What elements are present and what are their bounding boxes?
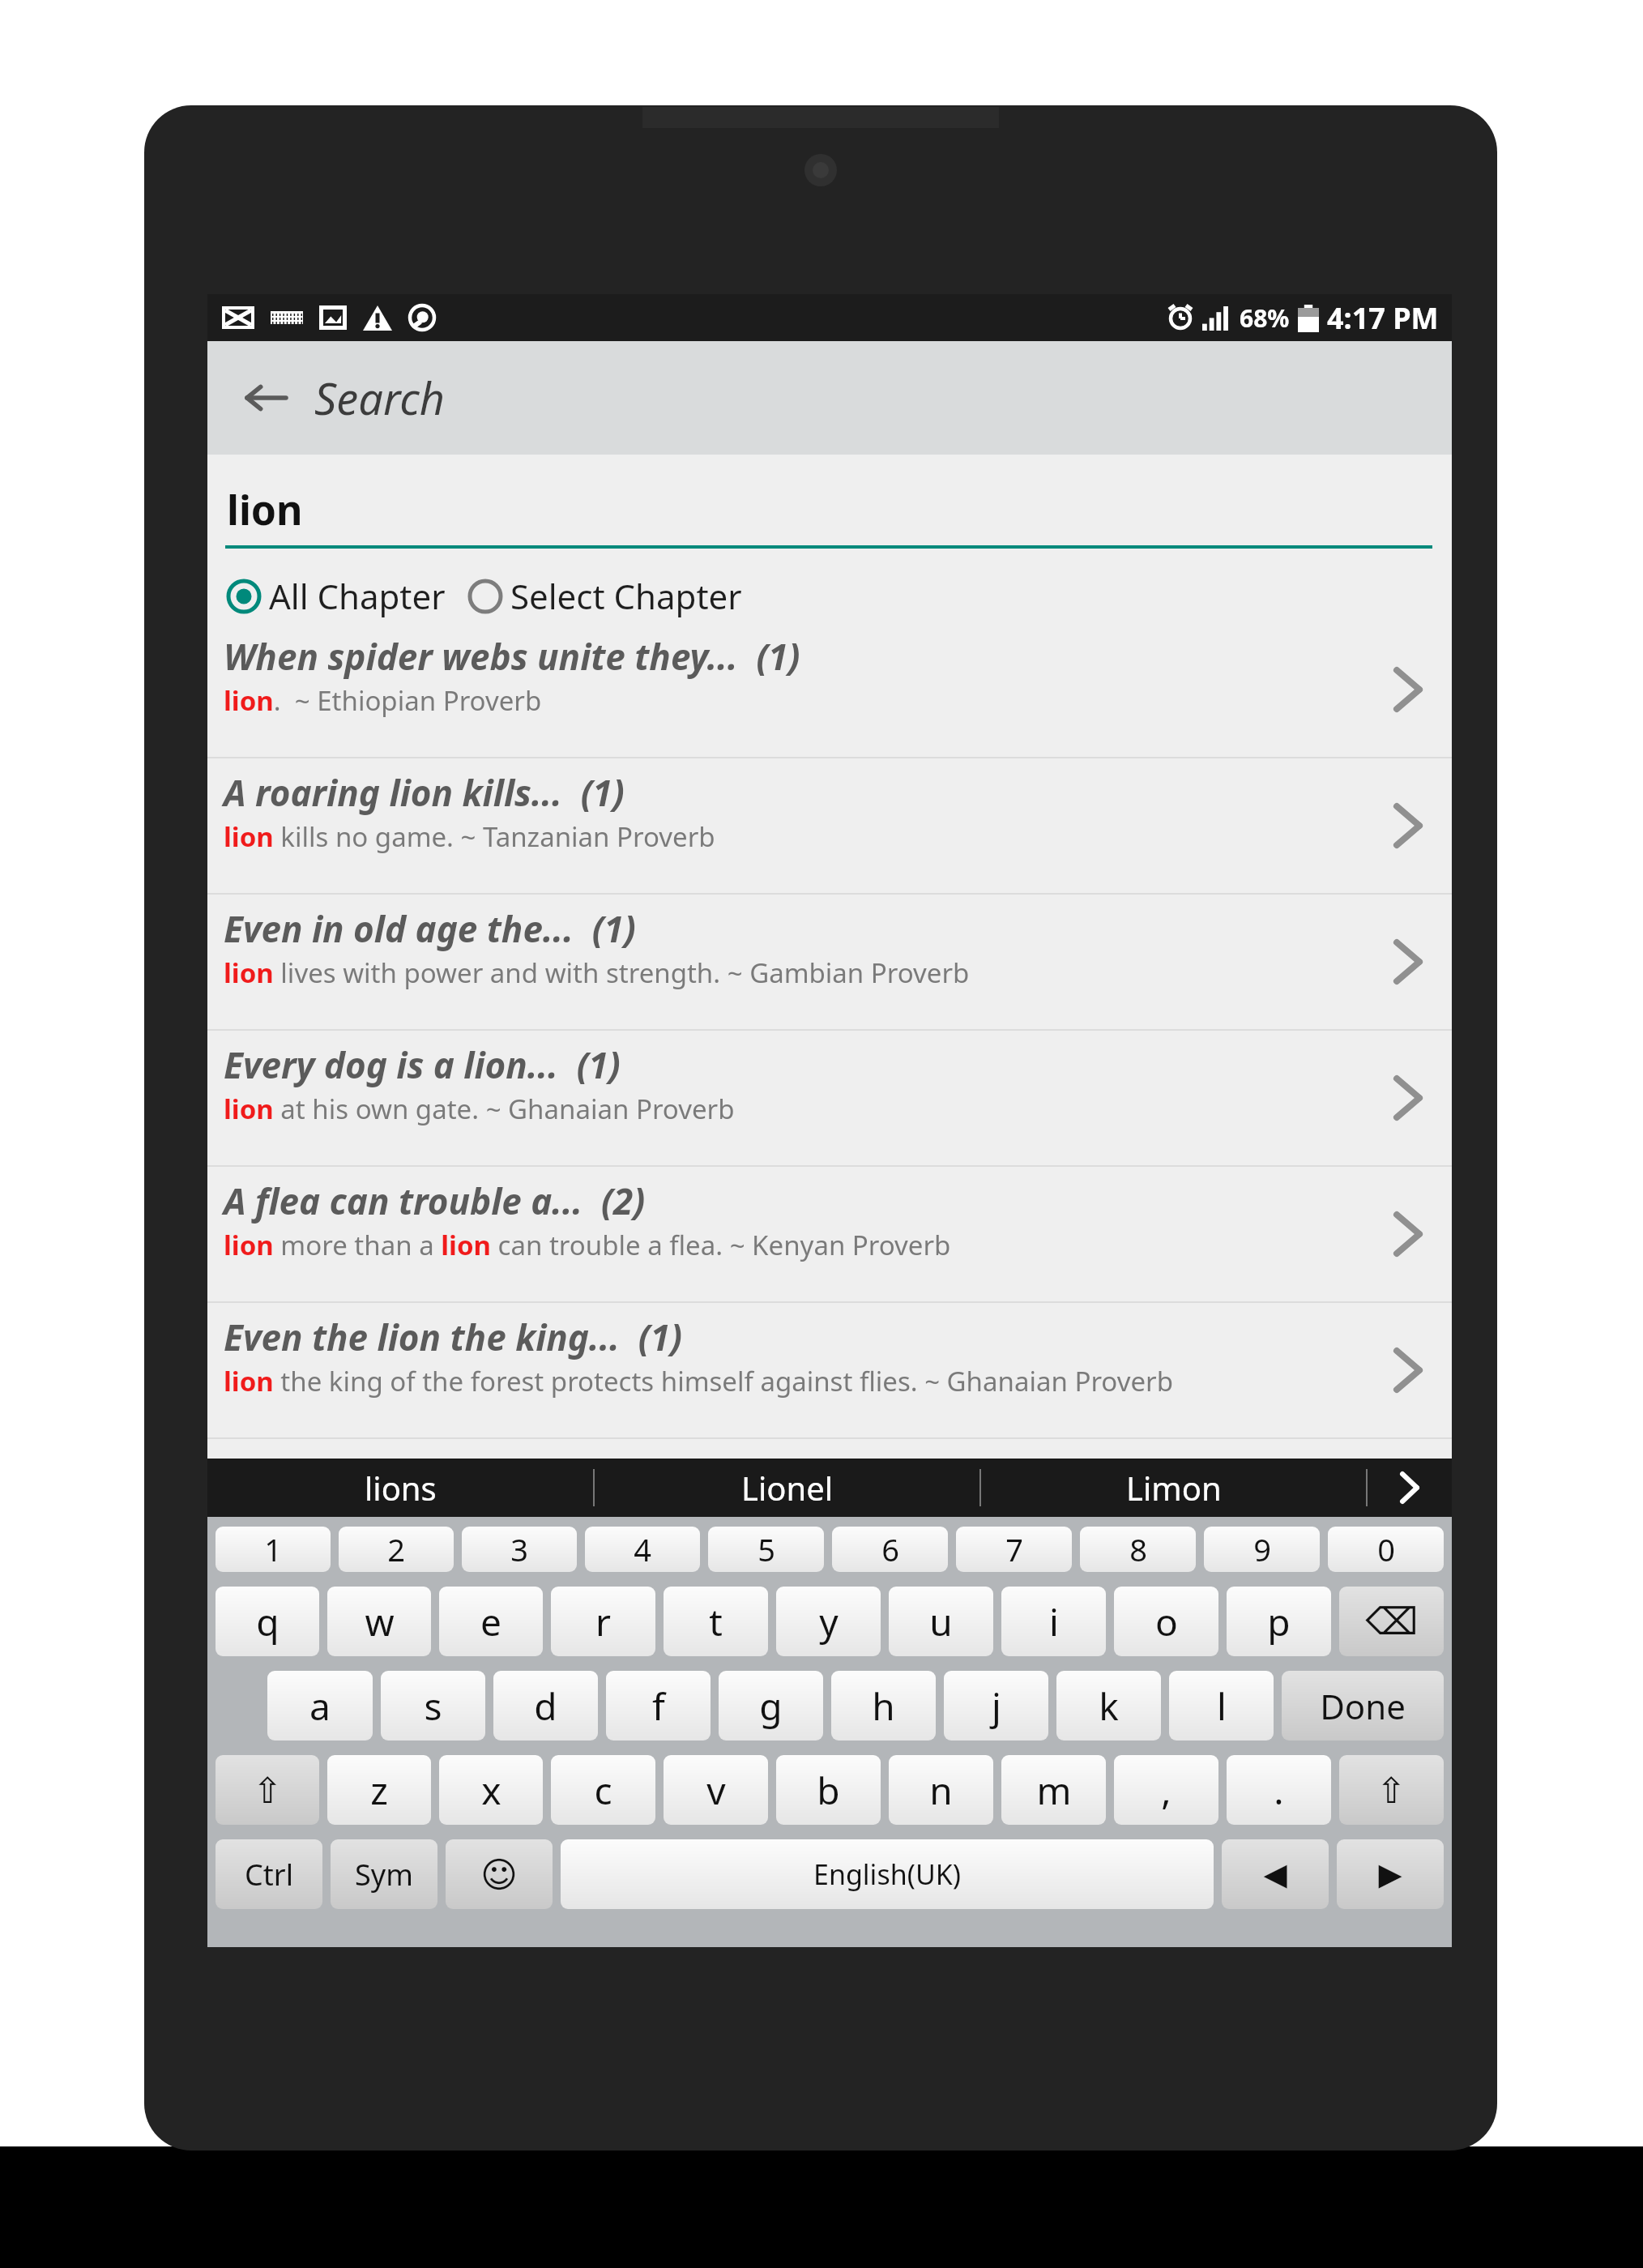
staticText: d <box>534 1681 557 1732</box>
button[interactable]: 9 <box>1204 1527 1320 1572</box>
staticText: l <box>1217 1681 1227 1732</box>
staticText: English(UK) <box>813 1856 961 1893</box>
staticText: Lionel <box>741 1466 834 1510</box>
staticText: lion kills no game. ~ Tanzanian Proverb <box>224 818 715 855</box>
staticText: ☺ <box>480 1854 518 1895</box>
button[interactable]: More suggestions <box>1368 1459 1452 1517</box>
button[interactable]: d <box>493 1671 598 1741</box>
button[interactable]: t <box>664 1587 768 1656</box>
button[interactable]: j <box>944 1671 1048 1741</box>
staticText: r <box>595 1596 611 1647</box>
button[interactable]: . <box>1227 1755 1331 1825</box>
button[interactable]: g <box>719 1671 823 1741</box>
staticText: n <box>929 1765 953 1816</box>
button[interactable]: 3 <box>462 1527 577 1572</box>
button[interactable]: 2 <box>339 1527 454 1572</box>
staticText: ⇧ <box>1376 1770 1406 1811</box>
staticText: 7 <box>1005 1528 1023 1570</box>
button[interactable]: ⇧ <box>216 1755 319 1825</box>
staticText: lion <box>227 482 303 537</box>
button[interactable]: u <box>889 1587 993 1656</box>
button[interactable]: 4 <box>585 1527 700 1572</box>
button[interactable]: w <box>327 1587 431 1656</box>
button[interactable]: c <box>551 1755 655 1825</box>
button[interactable]: 8 <box>1080 1527 1196 1572</box>
button[interactable]: ⌫ <box>1339 1587 1444 1656</box>
button[interactable]: A flea can trouble a... (2) <box>207 1167 1452 1301</box>
button[interactable]: a <box>267 1671 373 1741</box>
staticText: v <box>706 1765 726 1816</box>
staticText: 8 <box>1129 1528 1147 1570</box>
button[interactable]: n <box>889 1755 993 1825</box>
button[interactable]: 7 <box>956 1527 1072 1572</box>
button[interactable]: ◀ <box>1222 1839 1329 1909</box>
button[interactable]: lions <box>207 1459 593 1517</box>
button[interactable]: i <box>1001 1587 1106 1656</box>
staticText: Every dog is a lion... (1) <box>224 1040 621 1089</box>
button[interactable]: k <box>1056 1671 1161 1741</box>
staticText: z <box>370 1765 388 1816</box>
button[interactable]: Back <box>237 368 297 428</box>
button[interactable]: m <box>1001 1755 1106 1825</box>
button[interactable]: A roaring lion kills... (1) <box>207 758 1452 893</box>
button[interactable]: e <box>439 1587 543 1656</box>
staticText: f <box>652 1681 665 1732</box>
button[interactable]: y <box>776 1587 881 1656</box>
staticText: 0 <box>1377 1528 1395 1570</box>
button[interactable]: 6 <box>832 1527 948 1572</box>
button[interactable]: x <box>439 1755 543 1825</box>
button[interactable]: Even in old age the... (1) <box>207 895 1452 1029</box>
button[interactable]: All Chapter <box>225 573 459 619</box>
button[interactable]: o <box>1114 1587 1218 1656</box>
button[interactable]: ▶ <box>1337 1839 1444 1909</box>
staticText: 68% <box>1240 301 1290 335</box>
staticText: c <box>594 1765 612 1816</box>
button[interactable]: Select Chapter <box>459 573 742 619</box>
button[interactable]: r <box>551 1587 655 1656</box>
button[interactable]: 5 <box>708 1527 824 1572</box>
button[interactable]: b <box>776 1755 881 1825</box>
staticText: lion the king of the forest protects him… <box>224 1363 1173 1399</box>
staticText: Ctrl <box>245 1855 293 1894</box>
button[interactable]: Sym <box>331 1839 437 1909</box>
button[interactable]: Every dog is a lion... (1) <box>207 1031 1452 1165</box>
button[interactable]: s <box>381 1671 485 1741</box>
staticText: h <box>872 1681 895 1732</box>
button[interactable]: ⇧ <box>1339 1755 1444 1825</box>
button[interactable]: l <box>1169 1671 1274 1741</box>
button[interactable]: h <box>831 1671 936 1741</box>
staticText: m <box>1036 1765 1072 1816</box>
button[interactable]: Limon <box>981 1459 1366 1517</box>
button[interactable]: Done <box>1282 1671 1444 1741</box>
staticText: 9 <box>1253 1528 1271 1570</box>
staticText: 4:17 PM <box>1327 298 1439 338</box>
button[interactable]: Lionel <box>595 1459 979 1517</box>
staticText: A flea can trouble a... (2) <box>224 1177 646 1225</box>
button[interactable]: Ctrl <box>216 1839 322 1909</box>
button[interactable]: ☺ <box>446 1839 553 1909</box>
button[interactable]: q <box>216 1587 319 1656</box>
staticText: g <box>759 1681 783 1732</box>
staticText: s <box>424 1681 442 1732</box>
staticText: Limon <box>1126 1466 1222 1510</box>
staticText: k <box>1099 1681 1119 1732</box>
button[interactable]: When spider webs unite they... (1) <box>207 622 1452 757</box>
staticText: 1 <box>264 1528 282 1570</box>
staticText: ⇧ <box>253 1770 283 1811</box>
button[interactable]: z <box>327 1755 431 1825</box>
staticText: Even the lion the king... (1) <box>224 1313 683 1361</box>
button[interactable]: English(UK) <box>561 1839 1214 1909</box>
button[interactable]: p <box>1227 1587 1331 1656</box>
button[interactable]: , <box>1114 1755 1218 1825</box>
button[interactable]: 0 <box>1328 1527 1444 1572</box>
button[interactable]: Even the lion the king... (1) <box>207 1303 1452 1437</box>
button[interactable]: v <box>664 1755 768 1825</box>
staticText: q <box>256 1596 280 1647</box>
staticText: Select Chapter <box>510 573 742 619</box>
button[interactable]: f <box>606 1671 711 1741</box>
button[interactable]: 1 <box>216 1527 331 1572</box>
staticText: All Chapter <box>269 573 446 619</box>
staticText: Search <box>314 368 446 428</box>
staticText: i <box>1049 1596 1059 1647</box>
staticText: lion. ~ Ethiopian Proverb <box>224 682 542 719</box>
